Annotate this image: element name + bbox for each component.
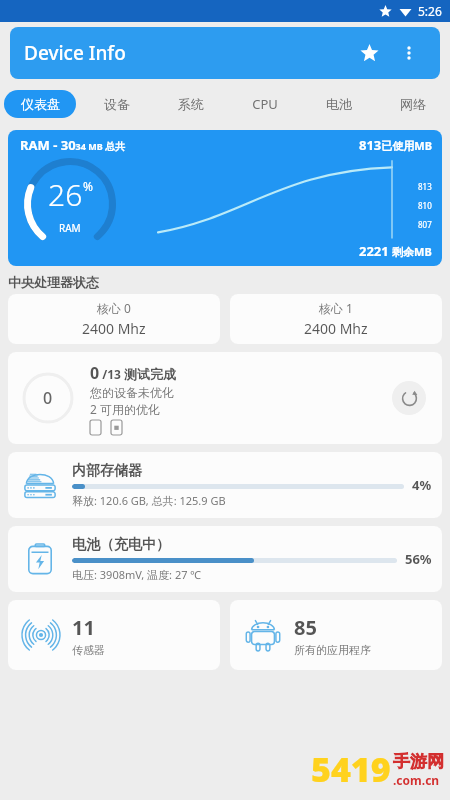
staticText: 2 可用的优化 [90, 401, 160, 417]
staticText: 0 [43, 387, 53, 409]
staticText: 810 [418, 200, 432, 211]
button[interactable]: 核心 0 [8, 294, 220, 344]
staticText: 2400 Mhz [304, 319, 368, 338]
button[interactable]: RAM - 3034 MB 总共 [8, 130, 442, 266]
staticText: 网络 [400, 96, 426, 112]
button[interactable]: 电池 [306, 90, 372, 118]
staticText: 11 [72, 614, 95, 641]
staticText: RAM [59, 221, 81, 235]
button[interactable]: 网络 [380, 90, 446, 118]
staticText: 5:26 [418, 3, 442, 19]
button[interactable]: 85 [230, 600, 442, 670]
staticText: 设备 [104, 96, 130, 112]
staticText: 56% [405, 550, 432, 568]
button[interactable]: Refresh [392, 381, 426, 415]
staticText: 85 [294, 614, 317, 641]
staticText: 核心 0 [97, 300, 131, 316]
staticText: 中央处理器状态 [8, 274, 99, 290]
button[interactable]: 电池（充电中） [8, 526, 442, 592]
staticText: 5419 [311, 746, 391, 792]
staticText: 电池（充电中） [72, 536, 170, 554]
staticText: 传感器 [72, 643, 105, 657]
button[interactable]: CPU [232, 89, 298, 119]
staticText: CPU [252, 95, 278, 113]
staticText: 807 [418, 219, 432, 230]
button[interactable]: 系统 [158, 90, 224, 118]
staticText: 2221 剩余MB [359, 242, 432, 260]
staticText: 813已使用MB [359, 136, 432, 154]
staticText: 4% [412, 476, 432, 494]
staticText: RAM - 3034 MB 总共 [20, 136, 126, 154]
staticText: 813 [418, 181, 432, 192]
staticText: 0 /13 测试完成 [90, 362, 177, 384]
button[interactable]: 仪表盘 [4, 90, 76, 118]
staticText: % [83, 178, 93, 194]
staticText: 核心 1 [319, 300, 353, 316]
staticText: 系统 [178, 96, 204, 112]
staticText: 您的设备未优化 [90, 385, 174, 400]
staticText: 仪表盘 [21, 96, 60, 112]
button[interactable]: 内部存储器 [8, 452, 442, 518]
button[interactable]: 0 [8, 352, 442, 444]
button[interactable]: More options [392, 36, 426, 70]
staticText: 手游网 [393, 751, 444, 772]
staticText: 2400 Mhz [82, 319, 146, 338]
staticText: 电池 [326, 96, 352, 112]
button[interactable]: 设备 [84, 90, 150, 118]
staticText: 内部存储器 [72, 462, 142, 480]
staticText: 26 [48, 174, 83, 215]
staticText: 电压: 3908mV, 温度: 27 ℃ [72, 567, 202, 582]
button[interactable]: 核心 1 [230, 294, 442, 344]
button[interactable]: Favorite [352, 36, 386, 70]
staticText: .com.cn [393, 772, 440, 788]
staticText: 所有的应用程序 [294, 643, 371, 657]
staticText: 释放: 120.6 GB, 总共: 125.9 GB [72, 493, 226, 508]
button[interactable]: 11 [8, 600, 220, 670]
staticText: Device Info [24, 40, 126, 66]
